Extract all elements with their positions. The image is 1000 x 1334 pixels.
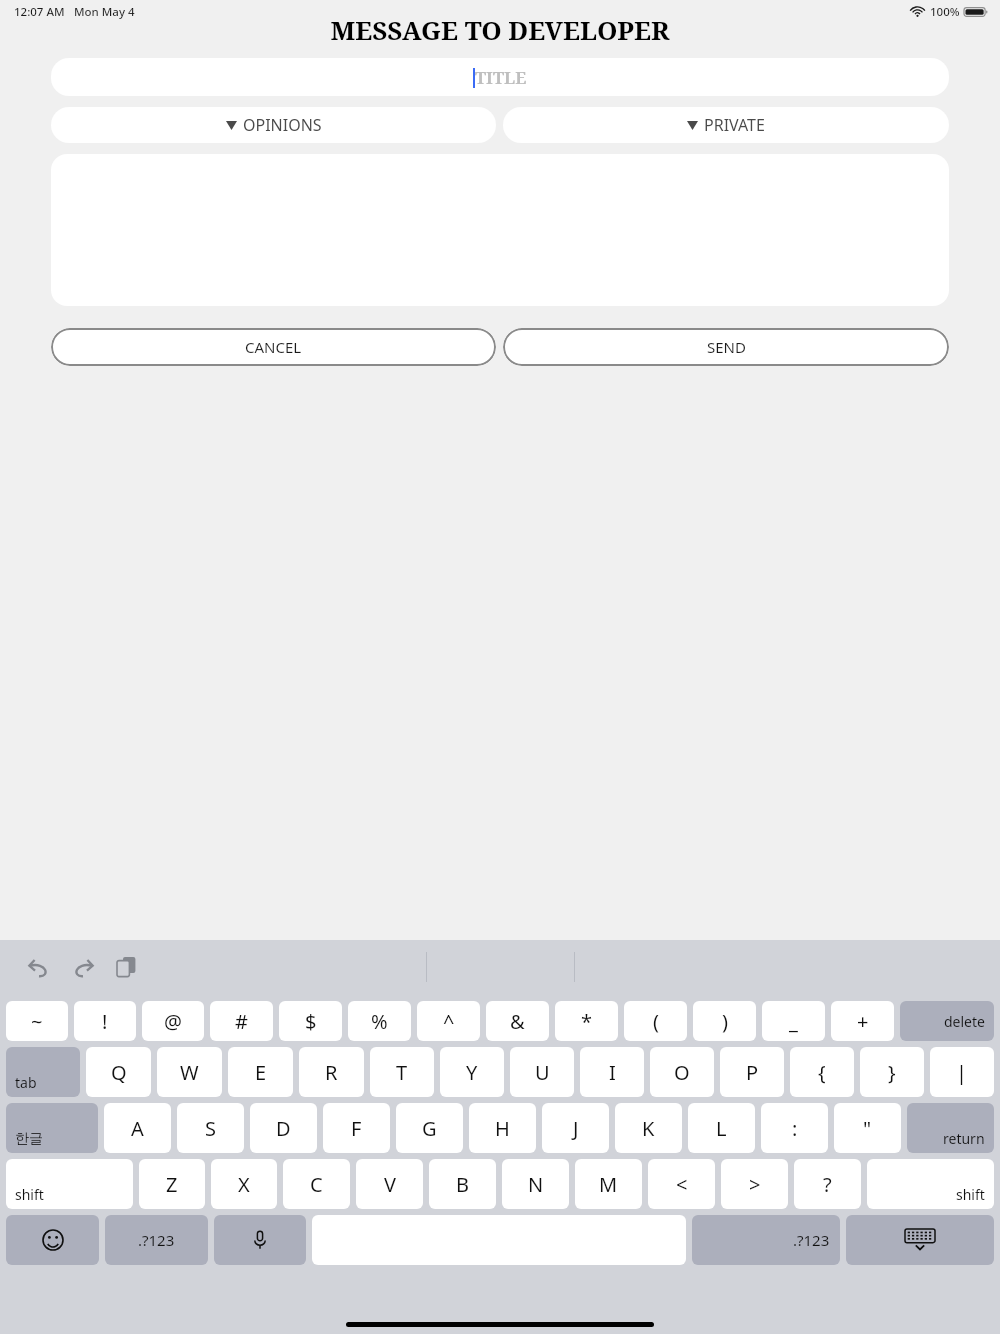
staticText: P — [746, 1059, 759, 1086]
button[interactable]: % — [348, 1001, 411, 1041]
staticText: : — [792, 1115, 798, 1142]
button[interactable]: CANCEL — [51, 328, 496, 366]
button[interactable]: B — [429, 1159, 496, 1209]
button[interactable]: & — [486, 1001, 549, 1041]
staticText: ? — [823, 1171, 832, 1198]
button[interactable]: V — [356, 1159, 423, 1209]
staticText: > — [749, 1171, 761, 1198]
button[interactable]: N — [502, 1159, 569, 1209]
button[interactable]: + — [831, 1001, 894, 1041]
button[interactable]: C — [283, 1159, 350, 1209]
button[interactable]: shift — [6, 1159, 133, 1209]
staticText: Mon May 4 — [74, 4, 135, 20]
staticText: E — [255, 1059, 267, 1086]
staticText: } — [888, 1059, 896, 1086]
button[interactable]: Redo — [66, 950, 100, 984]
button[interactable]: O — [650, 1047, 714, 1097]
button[interactable]: : — [761, 1103, 828, 1153]
staticText: W — [180, 1059, 199, 1086]
button[interactable]: TITLE — [51, 58, 949, 96]
button[interactable]: ) — [693, 1001, 756, 1041]
staticText: shift — [15, 1185, 44, 1204]
button[interactable]: M — [575, 1159, 642, 1209]
staticText: tab — [15, 1073, 37, 1092]
staticText: 12:07 AM — [14, 4, 65, 20]
button[interactable]: } — [860, 1047, 924, 1097]
button[interactable]: R — [299, 1047, 364, 1097]
staticText: T — [396, 1059, 408, 1086]
staticText: shift — [956, 1185, 985, 1204]
button[interactable]: { — [790, 1047, 854, 1097]
button[interactable]: > — [721, 1159, 788, 1209]
staticText: 한글 — [15, 1130, 43, 1148]
button[interactable]: * — [555, 1001, 618, 1041]
button[interactable]: _ — [762, 1001, 825, 1041]
staticText: & — [510, 1008, 525, 1035]
staticText: B — [456, 1171, 469, 1198]
button[interactable]: A — [104, 1103, 171, 1153]
button[interactable]: ( — [624, 1001, 687, 1041]
button[interactable]: I — [580, 1047, 644, 1097]
button[interactable]: ? — [794, 1159, 861, 1209]
button[interactable]: W — [157, 1047, 222, 1097]
button[interactable]: H — [469, 1103, 536, 1153]
staticText: F — [351, 1115, 362, 1142]
button[interactable]: F — [323, 1103, 390, 1153]
staticText: < — [676, 1171, 688, 1198]
button[interactable]: .?123 — [692, 1215, 840, 1265]
button[interactable]: SEND — [503, 328, 949, 366]
button[interactable]: Z — [139, 1159, 205, 1209]
button[interactable]: L — [688, 1103, 755, 1153]
button[interactable]: | — [930, 1047, 994, 1097]
button[interactable]: Paste — [110, 950, 144, 984]
button[interactable]: delete — [900, 1001, 994, 1041]
button[interactable]: ~ — [6, 1001, 68, 1041]
button[interactable]: X — [211, 1159, 277, 1209]
button[interactable]: K — [615, 1103, 682, 1153]
staticText: C — [310, 1171, 323, 1198]
button[interactable]: D — [250, 1103, 317, 1153]
button[interactable]: " — [834, 1103, 901, 1153]
button[interactable]: E — [228, 1047, 293, 1097]
staticText: % — [371, 1008, 388, 1035]
button[interactable]: ! — [74, 1001, 136, 1041]
button[interactable]: shift — [867, 1159, 994, 1209]
staticText: CANCEL — [245, 337, 302, 357]
button[interactable]: # — [210, 1001, 273, 1041]
button[interactable]: PRIVATE — [503, 107, 949, 143]
staticText: H — [495, 1115, 510, 1142]
staticText: V — [384, 1171, 396, 1198]
button[interactable]: S — [177, 1103, 244, 1153]
button[interactable]: U — [510, 1047, 574, 1097]
button[interactable]: P — [720, 1047, 784, 1097]
staticText: A — [131, 1115, 144, 1142]
button[interactable]: < — [648, 1159, 715, 1209]
staticText: 100% — [930, 4, 960, 20]
button[interactable]: Hide keyboard — [846, 1215, 994, 1265]
button[interactable]: Undo — [22, 950, 56, 984]
button[interactable]: return — [907, 1103, 994, 1153]
button[interactable]: Emoji — [6, 1215, 99, 1265]
button[interactable]: .?123 — [105, 1215, 208, 1265]
button[interactable]: Dictate — [214, 1215, 306, 1265]
staticText: U — [535, 1059, 550, 1086]
button[interactable]: J — [542, 1103, 609, 1153]
button[interactable]: T — [370, 1047, 434, 1097]
button[interactable]: $ — [279, 1001, 342, 1041]
staticText: return — [943, 1129, 985, 1148]
button[interactable]: @ — [142, 1001, 204, 1041]
staticText: + — [857, 1008, 869, 1035]
staticText: ) — [722, 1008, 728, 1035]
button[interactable]: tab — [6, 1047, 80, 1097]
staticText: X — [238, 1171, 250, 1198]
button[interactable]: G — [396, 1103, 463, 1153]
button[interactable]: 한글 — [6, 1103, 98, 1153]
button[interactable]: OPINIONS — [51, 107, 496, 143]
staticText: delete — [944, 1012, 985, 1031]
staticText: .?123 — [793, 1230, 830, 1250]
button[interactable]: Y — [440, 1047, 504, 1097]
button[interactable]: ^ — [417, 1001, 480, 1041]
button[interactable]: Q — [86, 1047, 151, 1097]
